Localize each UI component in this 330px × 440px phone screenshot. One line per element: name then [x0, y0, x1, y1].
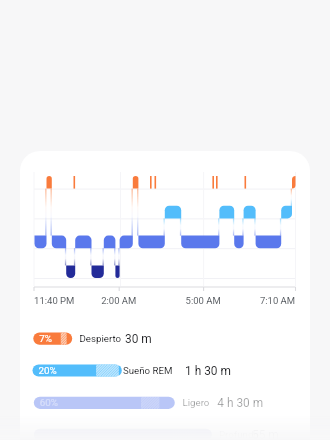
button[interactable]: Sleep stages chart	[0, 0, 330, 440]
